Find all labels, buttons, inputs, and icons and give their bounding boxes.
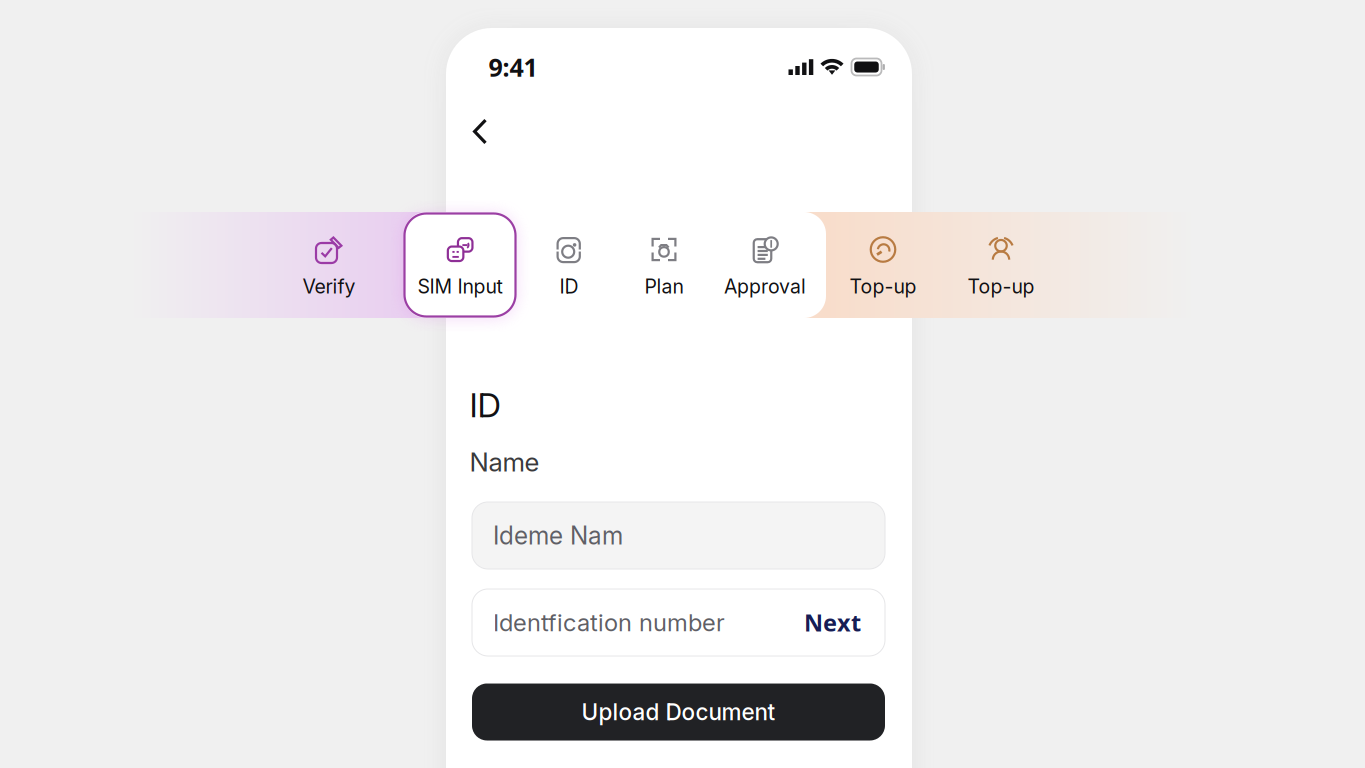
button[interactable]: Top-up <box>828 213 938 316</box>
staticText: 9:41 <box>488 50 537 84</box>
button[interactable]: Next <box>798 600 867 644</box>
staticText: ID <box>469 385 500 425</box>
button[interactable]: Upload Document <box>472 683 885 740</box>
staticText: Ideme Nam <box>493 521 623 550</box>
staticText: SIM Input <box>417 275 502 298</box>
staticText: Upload Document <box>581 698 775 726</box>
button[interactable]: Approval <box>710 213 820 316</box>
button[interactable]: ID <box>524 213 614 316</box>
staticText: ID <box>559 275 578 298</box>
staticText: Top-up <box>967 275 1034 298</box>
staticText: Approval <box>724 275 806 298</box>
button[interactable]: Plan <box>619 213 709 316</box>
staticText: Name <box>469 446 539 478</box>
staticText: Verify <box>302 275 355 298</box>
button[interactable]: Back <box>459 104 501 158</box>
button[interactable]: SIM Input <box>404 213 515 316</box>
staticText: Plan <box>644 275 683 298</box>
button[interactable]: Verify <box>274 213 384 316</box>
button[interactable]: Top-up <box>946 213 1056 316</box>
staticText: Next <box>804 606 861 638</box>
staticText: Top-up <box>849 275 916 298</box>
staticText: Identfication number <box>493 608 725 637</box>
